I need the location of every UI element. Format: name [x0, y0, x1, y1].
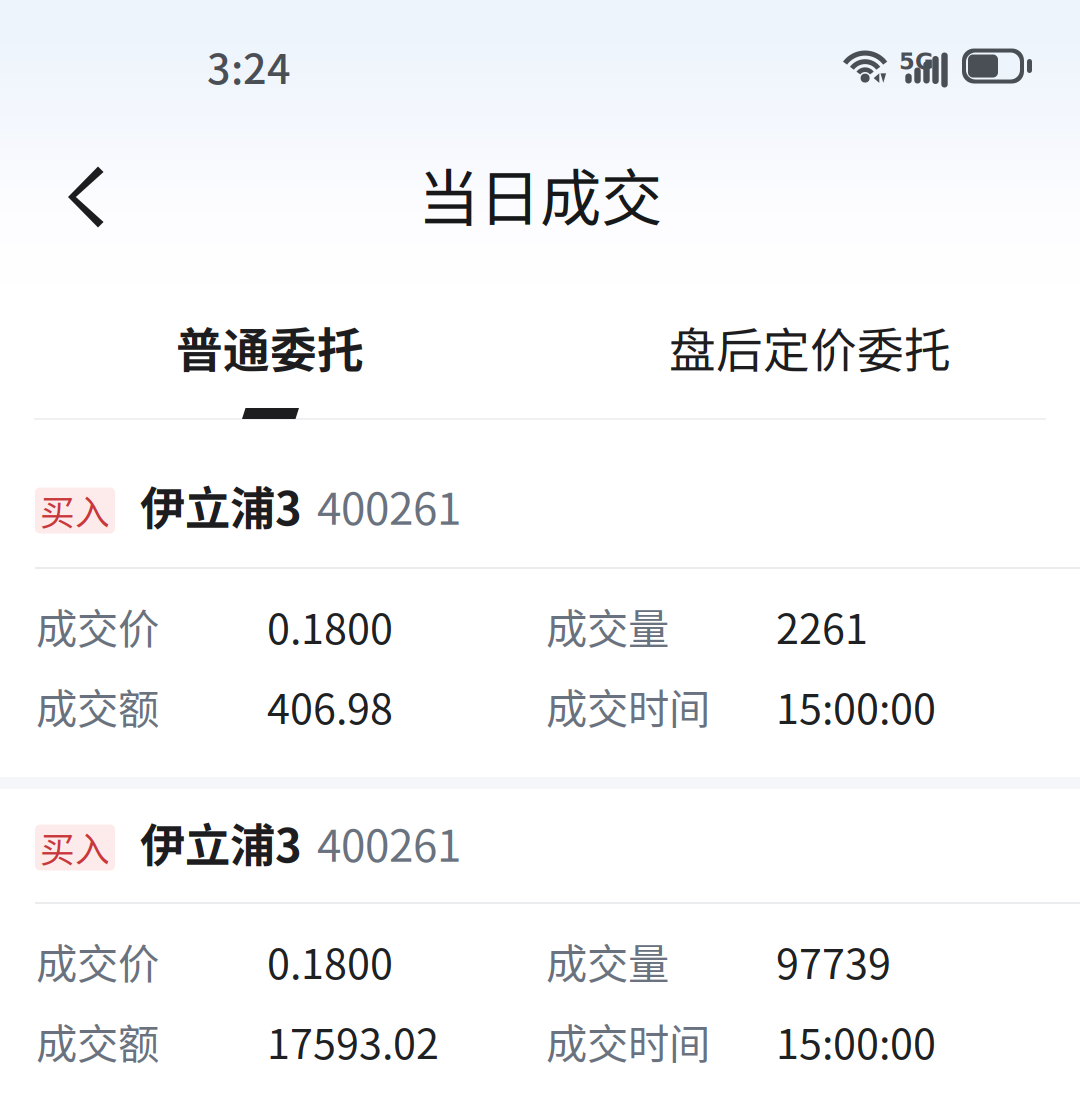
staticText: 成交额: [36, 676, 159, 736]
staticText: 买入: [40, 822, 110, 873]
staticText: 伊立浦3: [140, 473, 302, 538]
staticText: 成交价: [36, 931, 159, 991]
staticText: 普通委托: [176, 313, 364, 381]
button[interactable]: 盘后定价委托: [540, 311, 1080, 383]
staticText: 15:00:00: [776, 1011, 936, 1071]
staticText: 买入: [40, 485, 110, 536]
staticText: 成交量: [546, 596, 669, 656]
button[interactable]: Back: [0, 128, 188, 260]
staticText: 成交量: [546, 931, 669, 991]
staticText: 3:24: [207, 36, 291, 96]
staticText: 成交额: [36, 1011, 159, 1071]
staticText: 成交时间: [546, 1011, 710, 1071]
button[interactable]: 买入: [0, 789, 1080, 1106]
staticText: 0.1800: [267, 931, 393, 991]
staticText: 406.98: [267, 676, 393, 736]
staticText: 0.1800: [267, 596, 393, 656]
button[interactable]: 买入: [0, 450, 1080, 777]
staticText: 5G: [899, 48, 934, 75]
staticText: 成交时间: [546, 676, 710, 736]
staticText: 盘后定价委托: [669, 313, 951, 381]
staticText: 15:00:00: [776, 676, 936, 736]
staticText: 400261: [317, 474, 461, 537]
button[interactable]: 普通委托: [0, 311, 540, 383]
staticText: 当日成交: [418, 150, 662, 238]
staticText: 17593.02: [267, 1011, 439, 1071]
staticText: 成交价: [36, 596, 159, 656]
staticText: 伊立浦3: [140, 810, 302, 875]
staticText: 2261: [776, 596, 868, 656]
staticText: 97739: [776, 931, 891, 991]
staticText: 400261: [317, 811, 461, 874]
